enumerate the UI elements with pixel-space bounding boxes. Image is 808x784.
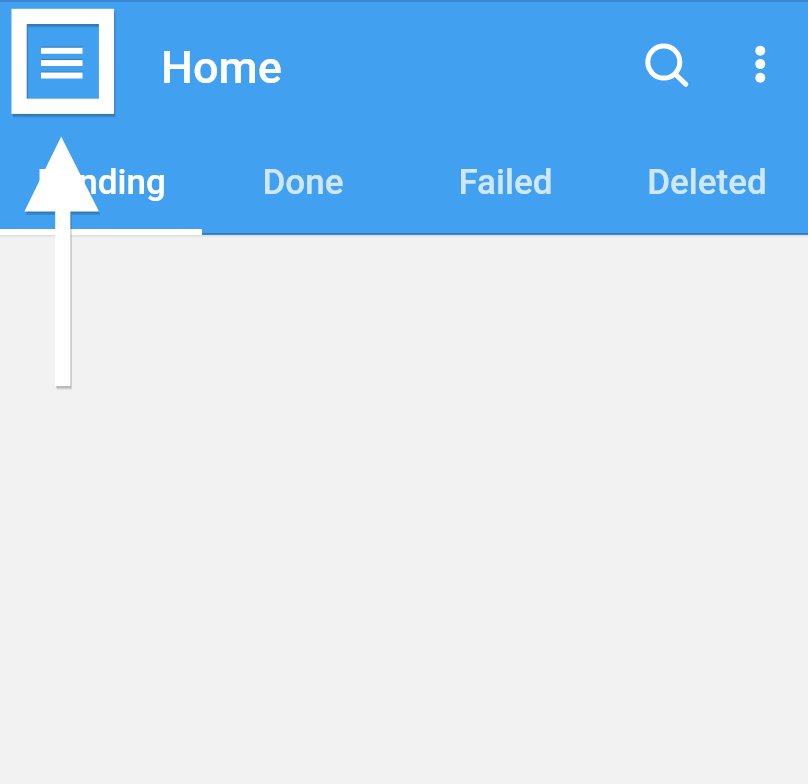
staticText: Home <box>161 41 282 94</box>
button[interactable]: Search <box>617 16 710 109</box>
button[interactable]: Open navigation drawer <box>12 8 115 115</box>
button[interactable]: Deleted <box>606 127 808 235</box>
staticText: Deleted <box>647 162 767 203</box>
staticText: Done <box>262 162 344 203</box>
button[interactable]: More options <box>714 16 807 109</box>
staticText: Pending <box>37 162 166 203</box>
button[interactable]: Pending <box>0 127 202 235</box>
staticText: Failed <box>458 162 553 203</box>
button[interactable]: Failed <box>404 127 606 235</box>
button[interactable]: Done <box>202 127 404 235</box>
